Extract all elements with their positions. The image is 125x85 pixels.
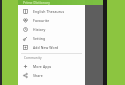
button[interactable]: Prime Dictionary	[18, 0, 85, 5]
staticText: Setting	[33, 36, 46, 41]
staticText: English Thesaurus	[33, 9, 65, 14]
button[interactable]: English Thesaurus	[18, 7, 85, 16]
staticText: Prime Dictionary	[23, 1, 51, 5]
button[interactable]: Share	[18, 71, 85, 80]
button[interactable]: Setting	[18, 34, 85, 43]
staticText: Share	[33, 73, 43, 78]
button[interactable]: Add New Word	[18, 43, 85, 52]
button[interactable]: History	[18, 25, 85, 34]
staticText: More Apps	[33, 64, 52, 69]
staticText: Community	[24, 56, 42, 60]
staticText: Add New Word	[33, 45, 59, 50]
staticText: History	[33, 27, 46, 32]
button[interactable]: Favourite	[18, 16, 85, 25]
button[interactable]: More Apps	[18, 62, 85, 71]
staticText: Favourite	[33, 18, 50, 23]
